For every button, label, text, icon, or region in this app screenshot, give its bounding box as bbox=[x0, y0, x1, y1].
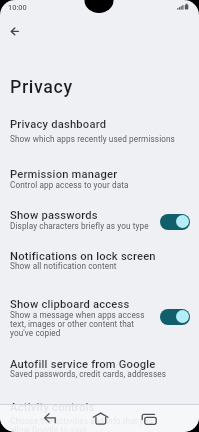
staticText: text, images or other content that bbox=[10, 319, 135, 329]
button[interactable]: Show passwords bbox=[0, 205, 199, 241]
staticText: allow Google to save bbox=[10, 425, 88, 432]
button[interactable]: Activity controls bbox=[0, 398, 199, 432]
staticText: you've copied bbox=[10, 328, 61, 338]
button[interactable]: Show clipboard access bbox=[0, 294, 199, 338]
staticText: Display characters briefly as you type bbox=[10, 221, 149, 231]
staticText: 10:00 bbox=[8, 3, 27, 12]
staticText: Autofill service from Google bbox=[10, 358, 156, 371]
button[interactable] bbox=[137, 406, 161, 430]
staticText: Show clipboard access bbox=[10, 298, 130, 311]
staticText: Show a message when apps access bbox=[10, 310, 145, 320]
button[interactable] bbox=[160, 309, 190, 325]
staticText: Show passwords bbox=[10, 209, 98, 222]
staticText: Show which apps recently used permission… bbox=[10, 134, 175, 144]
button[interactable]: Notifications on lock screen bbox=[0, 245, 199, 281]
button[interactable]: Autofill service from Google bbox=[0, 354, 199, 386]
button[interactable]: Permission manager bbox=[0, 164, 199, 200]
staticText: Show all notification content bbox=[10, 261, 117, 271]
staticText: Control app access to your data bbox=[10, 180, 129, 190]
staticText: Activity controls bbox=[10, 401, 95, 414]
staticText: Choose the activities and info that you bbox=[10, 416, 153, 426]
button[interactable] bbox=[38, 406, 62, 430]
staticText: Saved passwords, credit cards, addresses bbox=[10, 369, 166, 379]
button[interactable]: Privacy dashboard bbox=[0, 114, 199, 150]
staticText: Privacy bbox=[10, 76, 73, 97]
button[interactable] bbox=[6, 24, 24, 40]
staticText: Privacy dashboard bbox=[10, 118, 107, 131]
staticText: Notifications on lock screen bbox=[10, 250, 156, 263]
button[interactable] bbox=[88, 406, 112, 430]
staticText: Permission manager bbox=[10, 168, 118, 181]
button[interactable] bbox=[160, 214, 190, 230]
